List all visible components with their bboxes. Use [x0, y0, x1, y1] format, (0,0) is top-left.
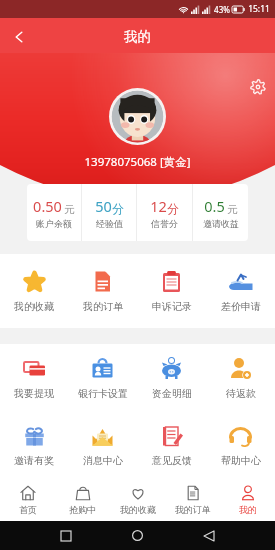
staticText: 我的收藏	[120, 504, 156, 515]
staticText: 银行卡设置	[78, 387, 128, 400]
staticText: 账户余额	[36, 218, 72, 229]
button[interactable]: 帮助中心	[206, 411, 275, 478]
button[interactable]: 0.50	[27, 184, 248, 241]
staticText: 待返款	[226, 387, 256, 400]
staticText: 元	[227, 203, 238, 216]
staticText: 元	[64, 203, 75, 216]
button[interactable]: 意见反馈	[137, 411, 206, 478]
button[interactable]: 我的收藏	[110, 478, 165, 521]
staticText: 我的订单	[83, 300, 123, 313]
staticText: 50	[95, 196, 112, 216]
button[interactable]: 差价申请	[206, 254, 275, 328]
button[interactable]: 0.5	[193, 184, 248, 241]
staticText: 我要提现	[14, 387, 54, 400]
button[interactable]: 待返款	[206, 344, 275, 411]
button[interactable]: 我的收藏	[0, 254, 68, 328]
staticText: 我的	[239, 504, 257, 515]
button[interactable]: Settings	[247, 76, 269, 98]
staticText: 经验值	[96, 218, 123, 229]
staticText: 我的	[124, 28, 151, 45]
button[interactable]: 0.50	[27, 184, 81, 241]
button[interactable]: 50	[82, 184, 136, 241]
staticText: 意见反馈	[152, 454, 192, 467]
staticText: 0.5	[204, 196, 225, 216]
button[interactable]: 12	[137, 184, 192, 241]
button[interactable]: 我的	[220, 478, 275, 521]
button[interactable]: 申诉记录	[137, 254, 206, 328]
button[interactable]: Back	[3, 21, 35, 53]
staticText: 抢购中	[69, 504, 96, 515]
button[interactable]: 我的订单	[165, 478, 220, 521]
button[interactable]: 我的订单	[68, 254, 137, 328]
button[interactable]: 邀请有奖	[0, 411, 68, 478]
button[interactable]: 首页	[0, 478, 55, 521]
staticText: 首页	[19, 504, 37, 515]
staticText: 12	[150, 196, 167, 216]
staticText: 13978075068 [黄金]	[0, 154, 275, 170]
staticText: 43%	[214, 4, 230, 15]
staticText: 分	[112, 201, 124, 216]
staticText: 消息中心	[83, 454, 123, 467]
staticText: 资金明细	[152, 387, 192, 400]
button[interactable]: 抢购中	[55, 478, 110, 521]
staticText: 0.50	[33, 196, 62, 216]
staticText: 15:11	[248, 3, 270, 15]
button[interactable]: 银行卡设置	[68, 344, 137, 411]
staticText: 我的收藏	[14, 300, 54, 313]
button[interactable]: 资金明细	[137, 344, 206, 411]
staticText: 我的订单	[175, 504, 211, 515]
button[interactable]: 我要提现	[0, 344, 68, 411]
staticText: 帮助中心	[221, 454, 261, 467]
staticText: 邀请有奖	[14, 454, 54, 467]
staticText: 申诉记录	[152, 300, 192, 313]
staticText: 信誉分	[151, 218, 178, 229]
button[interactable]: 消息中心	[68, 411, 137, 478]
staticText: 差价申请	[221, 300, 261, 313]
staticText: 分	[167, 201, 179, 216]
staticText: 邀请收益	[203, 218, 239, 229]
